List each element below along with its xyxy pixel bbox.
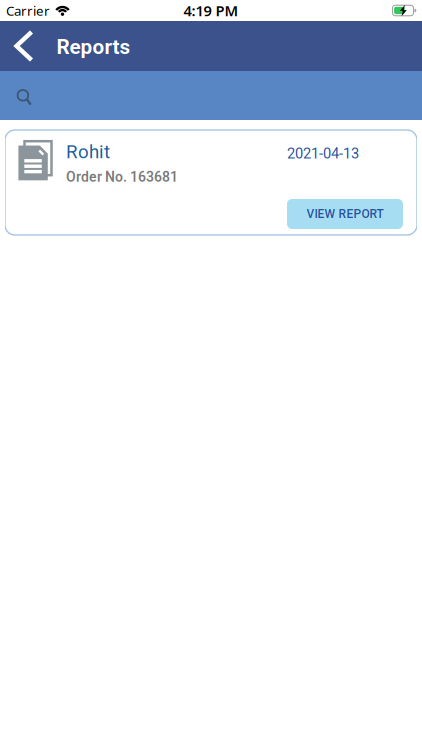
staticText: Order No. 163681 <box>66 169 178 185</box>
button[interactable]: VIEW REPORT <box>287 199 403 229</box>
button[interactable]: Back <box>0 21 33 71</box>
staticText: 4:19 PM <box>183 1 238 20</box>
staticText: Rohit <box>66 141 110 163</box>
staticText: Reports <box>56 35 130 59</box>
button[interactable]: Search <box>0 71 422 120</box>
staticText: 2021-04-13 <box>287 145 359 162</box>
staticText: VIEW REPORT <box>306 207 383 221</box>
staticText: Carrier <box>6 2 50 19</box>
